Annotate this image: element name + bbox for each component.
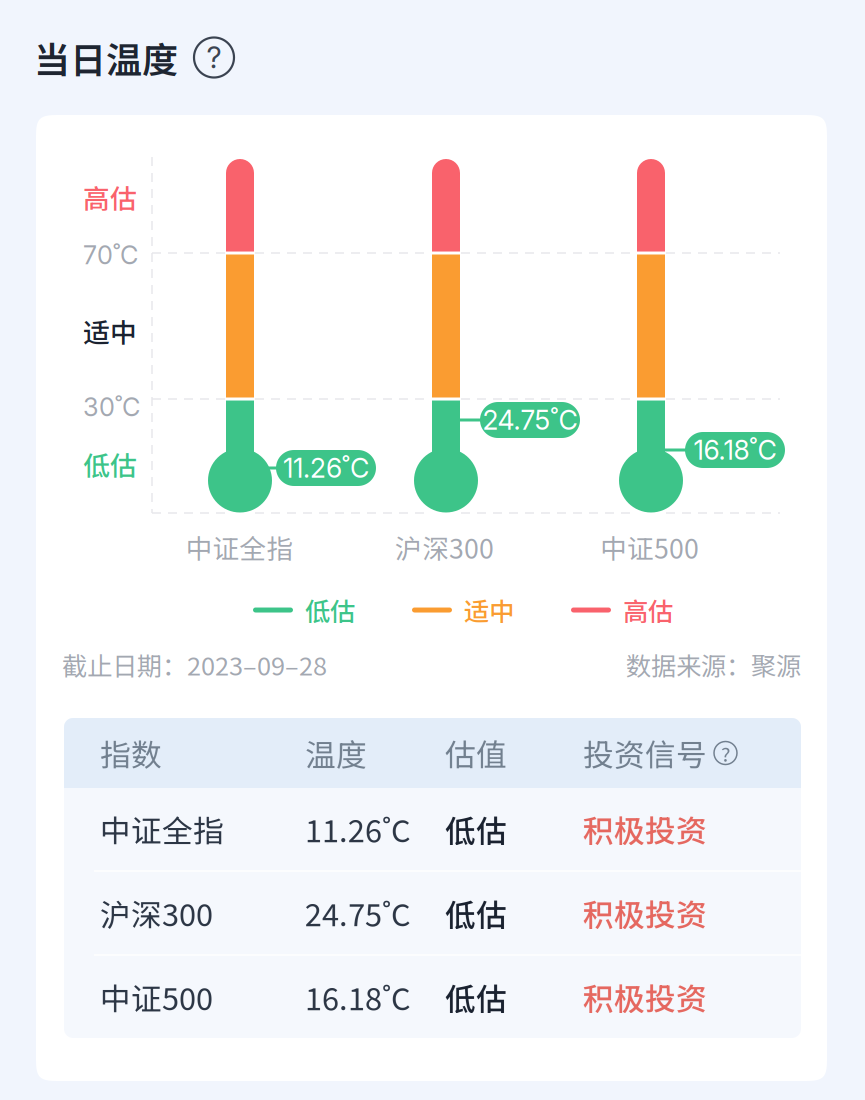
staticText: 30˚C: [83, 392, 140, 422]
staticText: 24.75˚C: [482, 404, 577, 436]
staticText: 中证500: [600, 528, 699, 566]
staticText: 24.75˚C: [305, 891, 411, 935]
staticText: 低估: [445, 807, 507, 851]
staticText: 积极投资: [583, 891, 707, 935]
button[interactable]: 说明: [194, 37, 234, 77]
staticText: 低估: [445, 891, 507, 935]
staticText: 70˚C: [83, 240, 138, 270]
staticText: 11.26˚C: [283, 452, 369, 484]
staticText: 16.18˚C: [693, 434, 776, 466]
staticText: ?: [721, 738, 730, 767]
staticText: 温度: [305, 731, 367, 775]
staticText: ?: [206, 40, 221, 75]
staticText: 积极投资: [583, 975, 707, 1019]
staticText: 当日温度: [34, 31, 178, 83]
staticText: 中证全指: [100, 807, 224, 851]
staticText: 数据来源：聚源: [626, 646, 801, 683]
staticText: 中证全指: [185, 528, 293, 566]
staticText: 投资信号: [583, 731, 707, 775]
staticText: 低估: [83, 445, 137, 483]
staticText: 适中: [464, 592, 514, 628]
staticText: 积极投资: [583, 807, 707, 851]
staticText: 低估: [305, 592, 355, 628]
staticText: 高估: [623, 592, 673, 628]
staticText: 高估: [83, 178, 137, 216]
staticText: 16.18˚C: [305, 975, 411, 1019]
staticText: 截止日期：2023–09–28: [62, 646, 327, 683]
staticText: 沪深300: [395, 528, 494, 566]
staticText: 沪深300: [100, 891, 213, 935]
staticText: 估值: [445, 731, 507, 775]
staticText: 11.26˚C: [305, 807, 411, 851]
staticText: 适中: [83, 312, 137, 350]
staticText: 指数: [100, 731, 162, 775]
staticText: 中证500: [100, 975, 213, 1019]
staticText: 低估: [445, 975, 507, 1019]
button[interactable]: 投资信号: [583, 731, 737, 775]
